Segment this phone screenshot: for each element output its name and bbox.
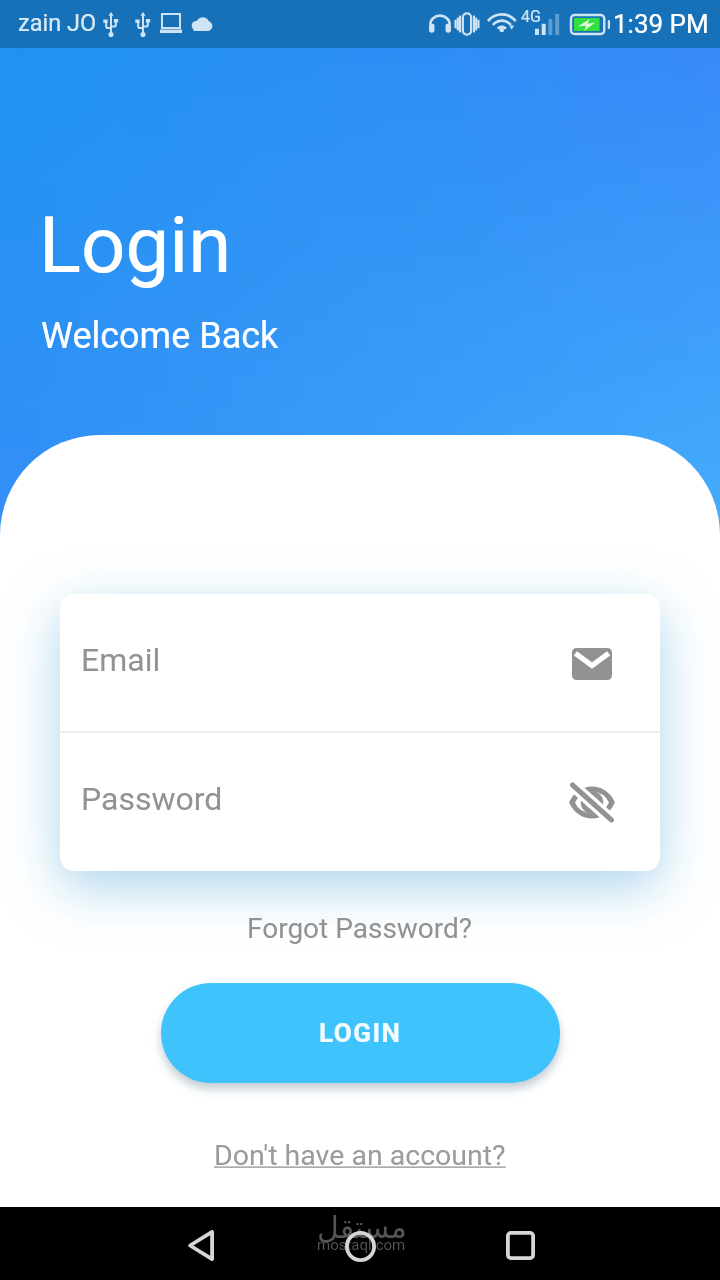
other: Show password xyxy=(568,778,616,826)
staticText: mostaql.com xyxy=(317,1236,406,1254)
button[interactable]: LOGIN xyxy=(161,983,560,1083)
staticText: Forgot Password? xyxy=(247,912,473,945)
other: Email xyxy=(568,640,616,688)
button[interactable]: Don't have an account? xyxy=(180,1128,540,1182)
staticText: Login xyxy=(39,200,232,291)
button[interactable]: Forgot Password? xyxy=(210,902,510,954)
button[interactable]: Home xyxy=(325,1211,395,1280)
staticText: zain JO xyxy=(18,9,97,37)
staticText: Email xyxy=(81,641,161,679)
staticText: مستقل xyxy=(317,1210,407,1245)
staticText: 1:39 PM xyxy=(613,9,709,39)
staticText: LOGIN xyxy=(319,1018,402,1048)
staticText: Don't have an account? xyxy=(214,1139,506,1172)
staticText: Password xyxy=(81,780,223,818)
staticText: Welcome Back xyxy=(41,315,279,357)
button[interactable]: Email xyxy=(60,594,660,733)
button[interactable]: Password xyxy=(60,733,660,871)
staticText: 4G xyxy=(521,7,541,26)
button[interactable]: Back xyxy=(165,1210,235,1280)
button[interactable]: Recent apps xyxy=(485,1210,555,1280)
